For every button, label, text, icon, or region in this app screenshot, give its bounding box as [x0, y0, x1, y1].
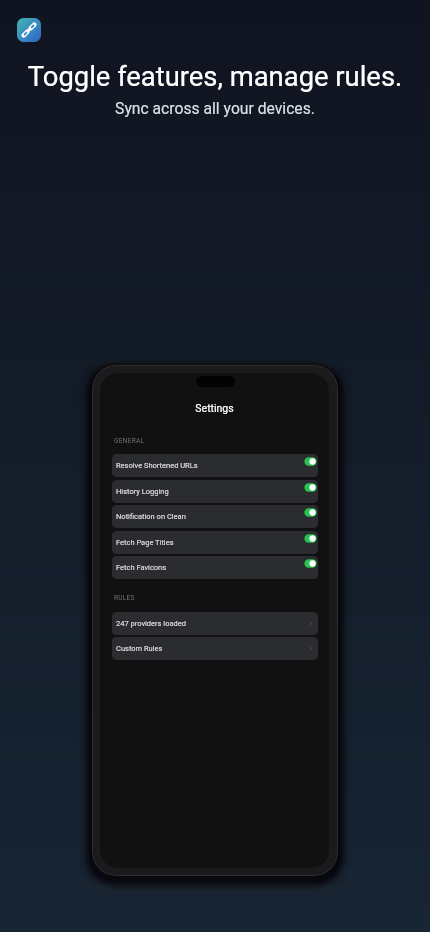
- button[interactable]: History Logging: [112, 480, 318, 503]
- staticText: Settings: [100, 402, 329, 414]
- button[interactable]: Fetch Favicons: [112, 556, 318, 579]
- staticText: Sync across all your devices.: [0, 99, 430, 117]
- staticText: Notification on Clean: [116, 512, 304, 521]
- staticText: Fetch Favicons: [116, 563, 304, 572]
- staticText: GENERAL: [114, 437, 145, 445]
- button[interactable]: Custom Rules: [112, 637, 318, 660]
- staticText: 247 providers loaded: [116, 619, 307, 628]
- staticText: Fetch Page Titles: [116, 538, 304, 547]
- button[interactable]: Fetch Page Titles: [112, 531, 318, 554]
- button[interactable]: Resolve Shortened URLs: [112, 454, 318, 477]
- staticText: Resolve Shortened URLs: [116, 461, 304, 470]
- staticText: Toggle features, manage rules.: [0, 61, 430, 93]
- button[interactable]: Notification on Clean: [112, 505, 318, 528]
- staticText: History Logging: [116, 487, 304, 496]
- staticText: Custom Rules: [116, 644, 307, 653]
- staticText: RULES: [114, 594, 135, 602]
- button[interactable]: App icon: [17, 18, 41, 42]
- button[interactable]: 247 providers loaded: [112, 612, 318, 635]
